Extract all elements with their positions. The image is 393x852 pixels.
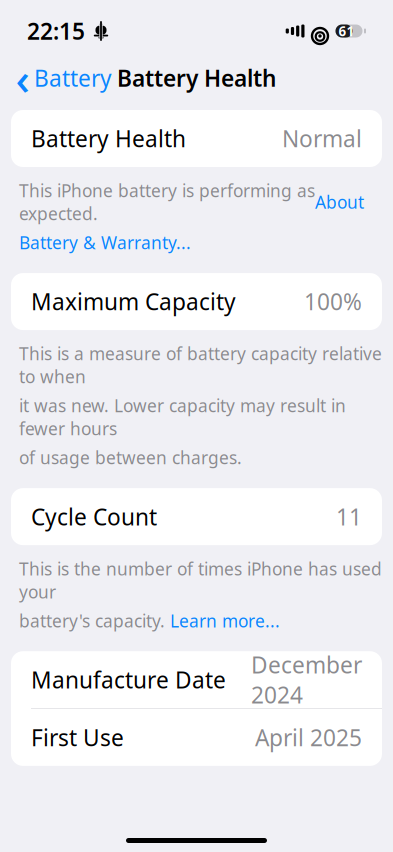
staticText: This iPhone battery is performing as exp… bbox=[19, 179, 315, 225]
staticText: Normal bbox=[282, 123, 362, 153]
button[interactable]: Learn more... bbox=[170, 609, 280, 632]
staticText: it was new. Lower capacity may result in… bbox=[19, 394, 346, 440]
staticText: 11 bbox=[336, 502, 362, 532]
staticText: About bbox=[315, 190, 364, 213]
staticText: April 2025 bbox=[255, 722, 362, 752]
staticText: This is a measure of battery capacity re… bbox=[19, 342, 382, 388]
staticText: First Use bbox=[31, 722, 124, 752]
button[interactable]: ‹ bbox=[12, 56, 116, 100]
staticText: ‹ bbox=[15, 49, 29, 107]
button[interactable]: First Use bbox=[11, 709, 382, 766]
staticText: This is the number of times iPhone has u… bbox=[19, 557, 382, 603]
staticText: battery's capacity. bbox=[19, 609, 170, 632]
staticText: Battery Health bbox=[31, 123, 186, 153]
button[interactable]: Cycle Count bbox=[11, 488, 382, 545]
button[interactable]: Manufacture Date bbox=[11, 651, 382, 708]
button[interactable]: Battery & Warranty... bbox=[19, 231, 191, 254]
staticText: Manufacture Date bbox=[31, 665, 226, 695]
button[interactable]: Maximum Capacity bbox=[11, 273, 382, 330]
staticText: of usage between charges. bbox=[19, 446, 242, 469]
button[interactable]: Battery Health bbox=[11, 110, 382, 167]
staticText: December 2024 bbox=[251, 650, 362, 710]
staticText: 61 bbox=[338, 22, 354, 40]
staticText: Cycle Count bbox=[31, 502, 157, 532]
staticText: Battery Health bbox=[117, 63, 276, 93]
staticText: Battery bbox=[34, 63, 112, 93]
staticText: 100% bbox=[304, 286, 362, 317]
button[interactable]: About bbox=[315, 190, 364, 213]
staticText: 22:15 bbox=[27, 16, 85, 46]
staticText: Learn more... bbox=[170, 609, 280, 632]
staticText: Maximum Capacity bbox=[31, 286, 236, 317]
staticText: Battery & Warranty... bbox=[19, 231, 191, 254]
